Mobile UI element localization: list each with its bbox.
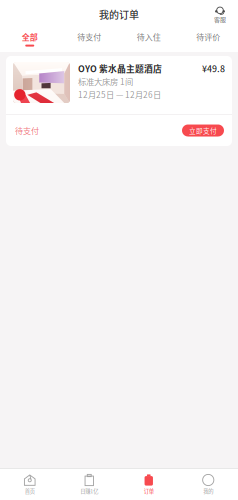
- staticText: 我的: [203, 487, 213, 495]
- button[interactable]: 我的: [178, 469, 238, 500]
- button[interactable]: 客服: [209, 3, 231, 25]
- button[interactable]: 全部: [0, 29, 59, 52]
- staticText: 全部: [22, 31, 38, 43]
- staticText: 12月25日 — 12月26日: [78, 88, 161, 100]
- button[interactable]: OYO 紫水晶主题酒店: [0, 52, 238, 146]
- staticText: 我的订单: [99, 7, 139, 22]
- button[interactable]: 待支付: [59, 29, 119, 52]
- button[interactable]: 日赚1亿: [59, 469, 119, 500]
- staticText: 日赚1亿: [80, 487, 98, 495]
- staticText: 首页: [25, 487, 35, 495]
- staticText: ¥49.8: [202, 62, 225, 75]
- staticText: OYO 紫水晶主题酒店: [78, 62, 162, 75]
- button[interactable]: 立即支付: [182, 124, 224, 136]
- staticText: 订单: [144, 487, 154, 495]
- staticText: 立即支付: [189, 126, 217, 135]
- staticText: 待入住: [137, 31, 161, 43]
- staticText: 待支付: [15, 125, 39, 136]
- staticText: 待支付: [77, 31, 101, 43]
- staticText: 客服: [214, 15, 226, 24]
- staticText: 标准大床房 1间: [78, 75, 133, 87]
- button[interactable]: 首页: [0, 469, 59, 500]
- button[interactable]: 订单: [119, 469, 178, 500]
- staticText: 待评价: [196, 31, 220, 43]
- button[interactable]: 待评价: [178, 29, 238, 52]
- button[interactable]: 待入住: [119, 29, 178, 52]
